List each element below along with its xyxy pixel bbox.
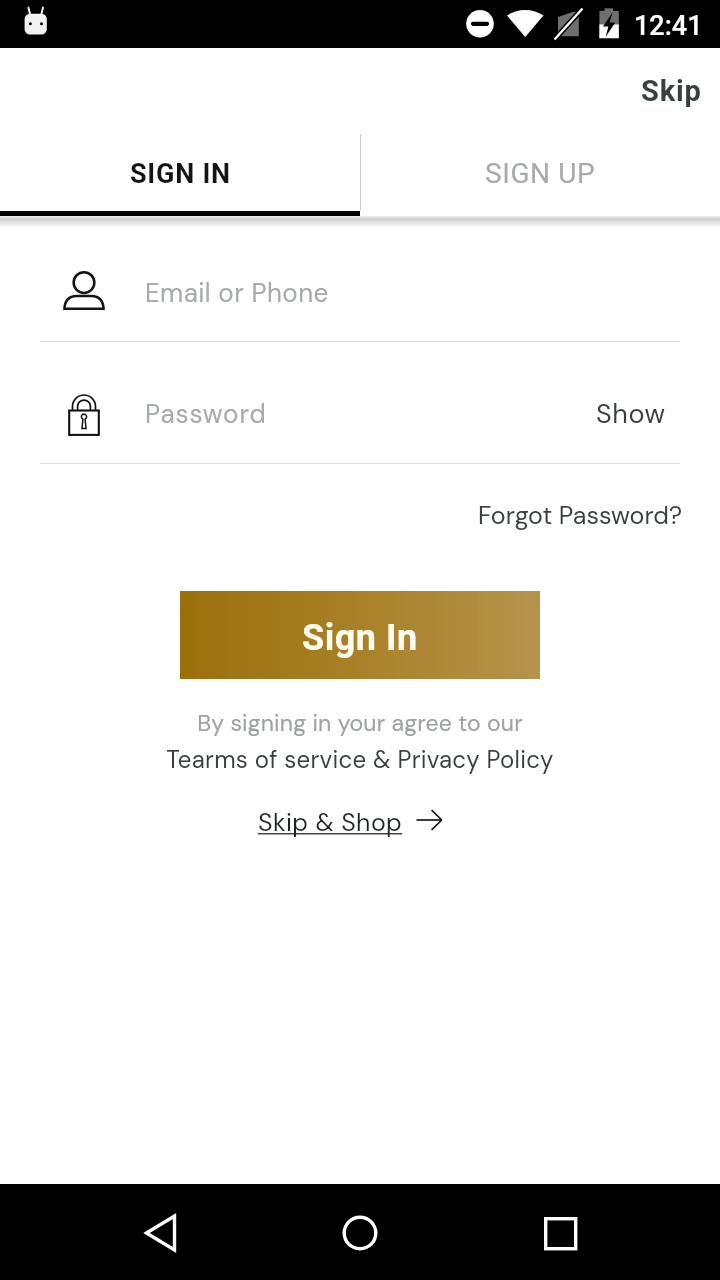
button[interactable]: Skip <box>613 68 720 114</box>
other: Android <box>0 0 720 48</box>
staticText: Password <box>145 397 267 431</box>
staticText: Forgot Password? <box>478 499 682 532</box>
staticText: Sign In <box>302 617 418 659</box>
button[interactable]: Home <box>320 1192 400 1272</box>
button[interactable]: Password <box>0 370 720 456</box>
button[interactable]: Account <box>0 249 720 335</box>
staticText: Email or Phone <box>145 276 329 310</box>
button[interactable]: SIGN IN <box>0 133 360 218</box>
button[interactable]: Forgot Password? <box>452 493 720 538</box>
staticText: Show <box>596 396 666 431</box>
button[interactable]: Skip & Shop <box>248 800 452 845</box>
staticText: Skip & Shop <box>258 806 403 839</box>
other: Password <box>61 390 107 436</box>
staticText: Skip <box>641 74 702 108</box>
staticText: 12:41 <box>634 10 703 42</box>
button[interactable]: SIGN UP <box>360 133 720 218</box>
button[interactable]: Back <box>120 1192 200 1272</box>
staticText: By signing in your agree to our <box>0 708 720 738</box>
staticText: SIGN UP <box>485 157 596 190</box>
button[interactable]: Sign In <box>180 591 540 679</box>
other: Account <box>61 269 107 315</box>
staticText: SIGN IN <box>130 158 231 190</box>
button[interactable]: Recents <box>520 1192 600 1272</box>
staticText: Tearms of service & Privacy Policy <box>0 744 720 775</box>
button[interactable]: Show <box>582 388 680 439</box>
